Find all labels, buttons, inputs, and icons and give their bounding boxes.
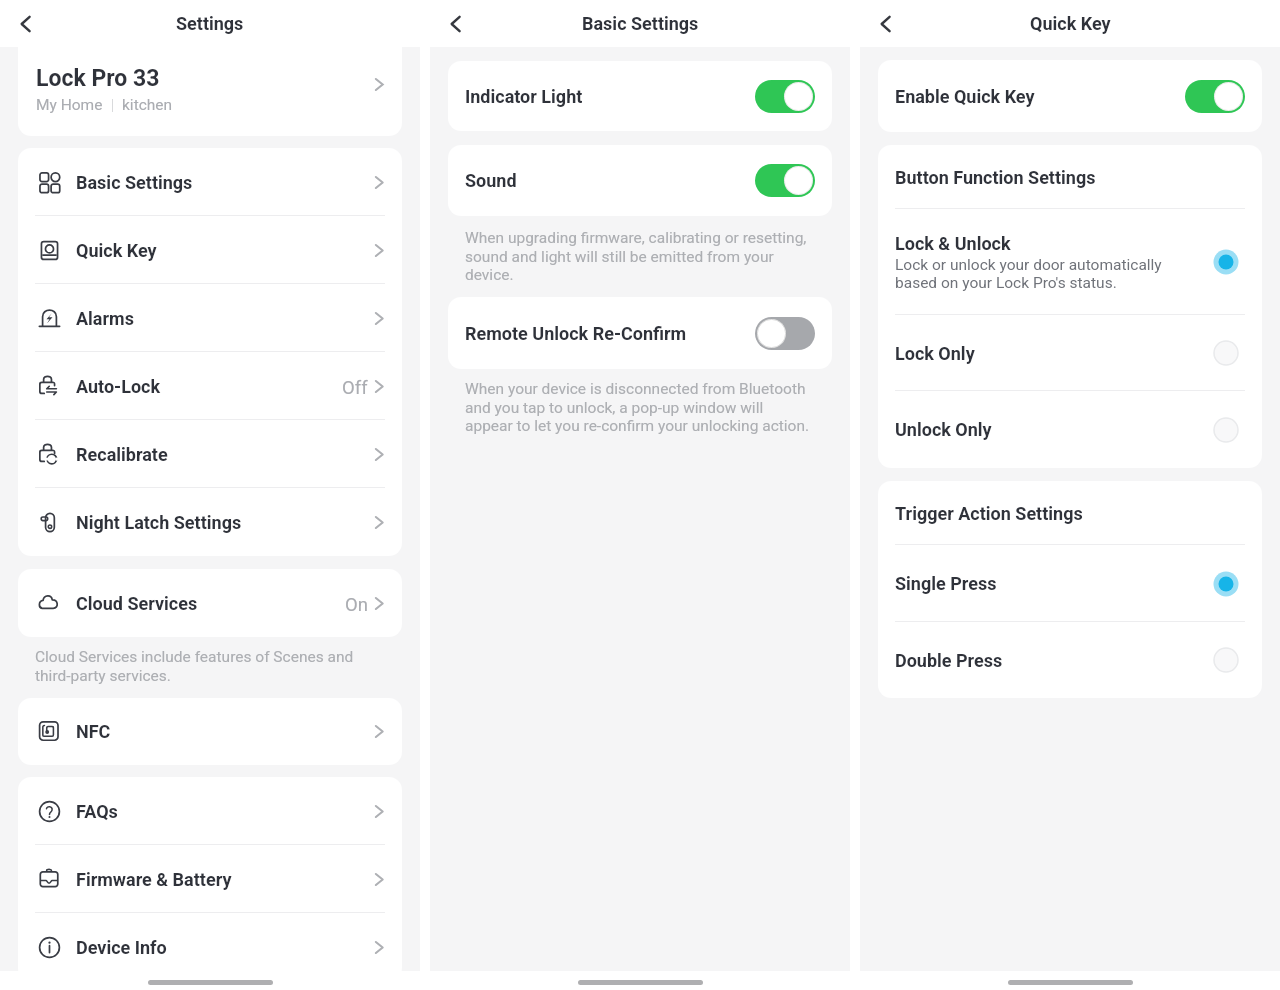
staticText: When upgrading firmware, calibrating or … bbox=[465, 229, 807, 283]
button[interactable]: Back bbox=[436, 4, 476, 44]
button[interactable]: Basic Settings bbox=[18, 148, 402, 216]
button[interactable]: Lock & Unlock bbox=[878, 209, 1262, 315]
staticText: Quick Key bbox=[76, 240, 157, 261]
button[interactable]: Device Info bbox=[18, 913, 402, 981]
staticText: Trigger Action Settings bbox=[895, 503, 1083, 524]
button[interactable]: Cloud Services bbox=[18, 569, 402, 637]
button[interactable]: Enable Quick Key bbox=[878, 60, 1262, 132]
button[interactable]: Select option bbox=[1212, 248, 1240, 276]
button[interactable]: Recalibrate bbox=[18, 420, 402, 488]
staticText: My Home bbox=[36, 96, 103, 114]
staticText: Lock Only bbox=[895, 343, 975, 364]
button[interactable]: Single Press bbox=[878, 545, 1262, 622]
button[interactable]: Indicator Light bbox=[448, 61, 832, 131]
staticText: Indicator Light bbox=[465, 86, 583, 107]
staticText: Cloud Services include features of Scene… bbox=[35, 648, 354, 684]
button[interactable]: Unlock Only bbox=[878, 391, 1262, 468]
button[interactable]: Lock Only bbox=[878, 315, 1262, 391]
staticText: Night Latch Settings bbox=[76, 512, 242, 533]
staticText: Single Press bbox=[895, 573, 997, 594]
staticText: Firmware & Battery bbox=[76, 869, 232, 890]
staticText: Recalibrate bbox=[76, 444, 168, 465]
staticText: When your device is disconnected from Bl… bbox=[465, 380, 810, 434]
button[interactable]: Back bbox=[866, 4, 906, 44]
button[interactable]: Double Press bbox=[878, 622, 1262, 698]
staticText: kitchen bbox=[122, 96, 173, 114]
staticText: Double Press bbox=[895, 650, 1003, 671]
button[interactable]: Back bbox=[6, 4, 46, 44]
button[interactable]: Switch on bbox=[1185, 80, 1245, 113]
staticText: Basic Settings bbox=[582, 13, 699, 34]
staticText: Sound bbox=[465, 170, 517, 191]
button[interactable]: Night Latch Settings bbox=[18, 488, 402, 556]
staticText: On bbox=[345, 594, 368, 616]
button[interactable]: Switch on bbox=[755, 80, 815, 113]
button[interactable]: FAQs bbox=[18, 777, 402, 845]
button[interactable]: Alarms bbox=[18, 284, 402, 352]
staticText: Alarms bbox=[76, 308, 134, 329]
staticText: Button Function Settings bbox=[895, 167, 1096, 188]
staticText: Device Info bbox=[76, 937, 167, 958]
staticText: Lock Pro 33 bbox=[36, 65, 160, 92]
button[interactable]: Select option bbox=[1212, 339, 1240, 367]
button[interactable]: Lock Pro 33 bbox=[18, 25, 402, 136]
staticText: Lock & Unlock bbox=[895, 233, 1011, 254]
staticText: Off bbox=[342, 377, 368, 399]
button[interactable]: Select option bbox=[1212, 570, 1240, 598]
staticText: Settings bbox=[176, 13, 244, 34]
button[interactable]: Auto-Lock bbox=[18, 352, 402, 420]
button[interactable]: Sound bbox=[448, 145, 832, 216]
button[interactable]: NFC bbox=[18, 698, 402, 765]
button[interactable]: Switch off bbox=[755, 317, 815, 350]
staticText: Remote Unlock Re-Confirm bbox=[465, 323, 687, 344]
staticText: Unlock Only bbox=[895, 419, 992, 440]
button[interactable]: Firmware & Battery bbox=[18, 845, 402, 913]
staticText: Cloud Services bbox=[76, 593, 198, 614]
staticText: NFC bbox=[76, 721, 111, 742]
button[interactable]: Switch on bbox=[755, 164, 815, 197]
button[interactable]: Quick Key bbox=[18, 216, 402, 284]
staticText: Enable Quick Key bbox=[895, 86, 1035, 107]
staticText: FAQs bbox=[76, 801, 118, 822]
staticText: Basic Settings bbox=[76, 172, 193, 193]
button[interactable]: Remote Unlock Re-Confirm bbox=[448, 297, 832, 369]
button[interactable]: Select option bbox=[1212, 416, 1240, 444]
staticText: Quick Key bbox=[1030, 13, 1111, 34]
button[interactable]: Select option bbox=[1212, 646, 1240, 674]
staticText: Lock or unlock your door automatically b… bbox=[895, 256, 1162, 292]
staticText: Auto-Lock bbox=[76, 376, 161, 397]
